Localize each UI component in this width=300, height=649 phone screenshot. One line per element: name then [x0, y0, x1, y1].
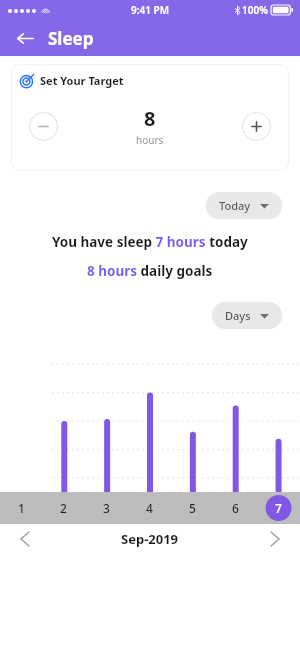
- button[interactable]: Today: [206, 192, 282, 219]
- button[interactable]: 3: [85, 492, 128, 524]
- button[interactable]: Previous month: [12, 526, 38, 552]
- staticText: 1: [18, 500, 25, 516]
- staticText: Sep-2019: [121, 530, 179, 548]
- button[interactable]: 1: [0, 492, 42, 524]
- staticText: 4: [146, 500, 153, 516]
- staticText: 6: [232, 500, 239, 516]
- button[interactable]: Days: [212, 302, 282, 329]
- button[interactable]: 6: [214, 492, 257, 524]
- button[interactable]: 2: [42, 492, 85, 524]
- button[interactable]: 7: [257, 492, 300, 524]
- staticText: 8 hours daily goals: [87, 262, 213, 280]
- button[interactable]: Back: [13, 26, 37, 50]
- staticText: You have sleep 7 hours today: [52, 233, 248, 251]
- button[interactable]: Decrease target: [29, 112, 58, 141]
- staticText: 9:41 PM: [131, 3, 169, 17]
- staticText: 3: [103, 500, 110, 516]
- staticText: Days: [225, 308, 251, 323]
- staticText: hours: [136, 133, 164, 147]
- staticText: 100%: [242, 3, 268, 17]
- staticText: Set Your Target: [40, 73, 124, 88]
- staticText: 5: [189, 500, 196, 516]
- staticText: Sleep: [48, 27, 94, 50]
- button[interactable]: 5: [171, 492, 214, 524]
- button[interactable]: Increase target: [242, 112, 271, 141]
- button[interactable]: 4: [128, 492, 171, 524]
- staticText: 2: [60, 500, 67, 516]
- staticText: 7: [275, 500, 282, 516]
- staticText: 8: [144, 105, 156, 132]
- staticText: Today: [219, 198, 251, 213]
- button[interactable]: Next month: [262, 526, 288, 552]
